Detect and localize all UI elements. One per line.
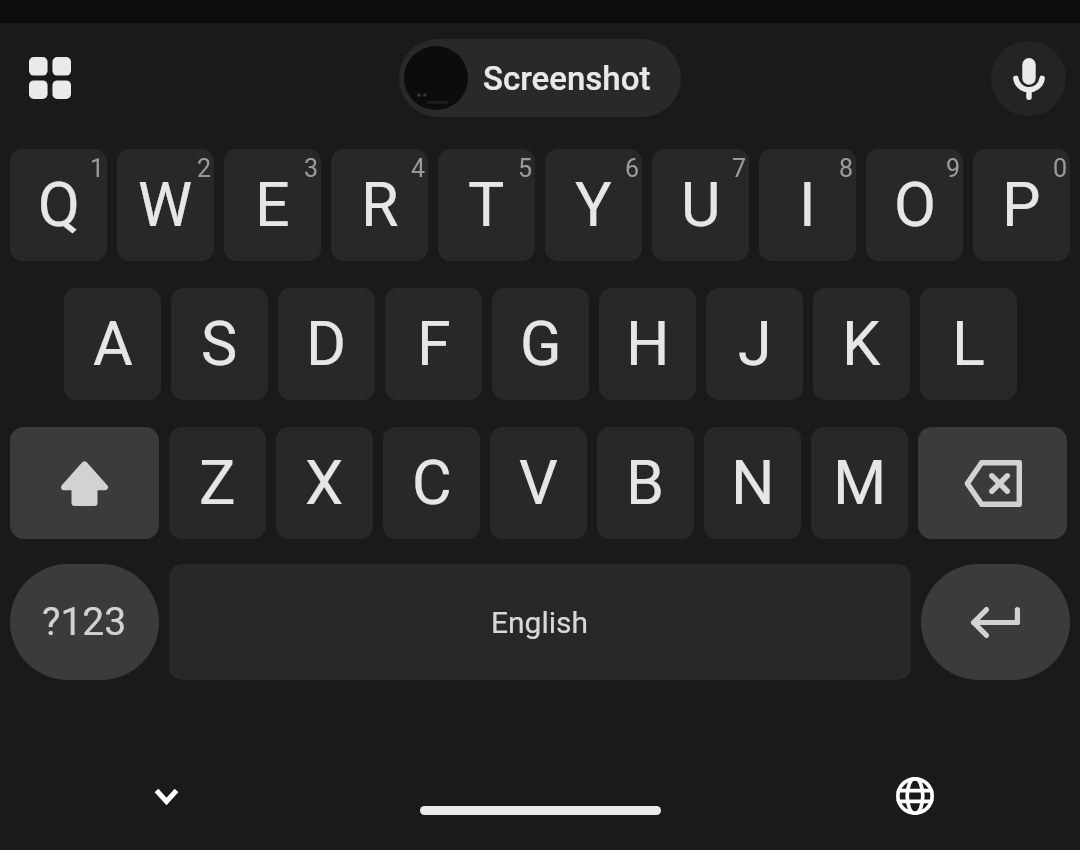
staticText: O: [894, 169, 936, 240]
button[interactable]: Voice input: [991, 41, 1066, 116]
button[interactable]: Y: [545, 149, 642, 261]
button[interactable]: W: [117, 149, 214, 261]
button[interactable]: E: [224, 149, 321, 261]
staticText: P: [1002, 169, 1041, 240]
staticText: 9: [946, 154, 961, 183]
button[interactable]: H: [599, 288, 696, 400]
staticText: Y: [575, 169, 612, 240]
staticText: H: [626, 308, 670, 379]
staticText: 4: [411, 154, 426, 183]
staticText: Q: [38, 169, 80, 240]
staticText: 3: [304, 154, 319, 183]
button[interactable]: Enter: [921, 564, 1070, 680]
button[interactable]: S: [171, 288, 268, 400]
staticText: K: [842, 308, 881, 379]
button[interactable]: Backspace: [918, 427, 1067, 539]
staticText: L: [952, 308, 985, 379]
button[interactable]: B: [597, 427, 694, 539]
button[interactable]: N: [704, 427, 801, 539]
button[interactable]: P: [973, 149, 1070, 261]
staticText: ?123: [42, 599, 127, 645]
staticText: S: [201, 308, 238, 379]
staticText: F: [417, 308, 451, 379]
staticText: T: [468, 169, 505, 240]
staticText: U: [681, 169, 721, 240]
staticText: E: [255, 169, 290, 240]
button[interactable]: Hide keyboard: [126, 756, 206, 836]
staticText: C: [412, 447, 452, 518]
button[interactable]: Q: [10, 149, 107, 261]
button[interactable]: X: [276, 427, 373, 539]
staticText: Screenshot: [483, 59, 651, 98]
button[interactable]: R: [331, 149, 428, 261]
button[interactable]: V: [490, 427, 587, 539]
button[interactable]: L: [920, 288, 1017, 400]
button[interactable]: U: [652, 149, 749, 261]
staticText: 6: [625, 154, 640, 183]
button[interactable]: T: [438, 149, 535, 261]
staticText: X: [305, 447, 344, 518]
staticText: Z: [199, 447, 236, 518]
button[interactable]: G: [492, 288, 589, 400]
staticText: N: [731, 447, 775, 518]
staticText: 2: [197, 154, 212, 183]
button[interactable]: English: [169, 564, 911, 680]
button[interactable]: J: [706, 288, 803, 400]
staticText: 5: [518, 154, 533, 183]
button[interactable]: K: [813, 288, 910, 400]
button[interactable]: Keyboard toolbar: [8, 36, 92, 120]
staticText: 1: [90, 154, 105, 183]
button[interactable]: Z: [169, 427, 266, 539]
button[interactable]: M: [811, 427, 908, 539]
staticText: J: [738, 308, 772, 379]
button[interactable]: D: [278, 288, 375, 400]
button[interactable]: I: [759, 149, 856, 261]
button[interactable]: Screenshot: [399, 39, 681, 117]
button[interactable]: C: [383, 427, 480, 539]
button[interactable]: Shift: [10, 427, 159, 539]
button[interactable]: Change language: [875, 756, 955, 836]
staticText: G: [520, 308, 562, 379]
staticText: B: [626, 447, 665, 518]
staticText: D: [306, 308, 347, 379]
staticText: R: [361, 169, 399, 240]
staticText: 8: [839, 154, 854, 183]
staticText: A: [93, 308, 133, 379]
button[interactable]: ?123: [10, 564, 159, 680]
staticText: 7: [732, 154, 747, 183]
staticText: 0: [1053, 154, 1068, 183]
button[interactable]: A: [64, 288, 161, 400]
button[interactable]: F: [385, 288, 482, 400]
staticText: I: [799, 169, 816, 240]
staticText: W: [138, 169, 193, 240]
staticText: V: [519, 447, 558, 518]
staticText: English: [491, 605, 589, 640]
staticText: M: [833, 447, 887, 518]
button[interactable]: O: [866, 149, 963, 261]
